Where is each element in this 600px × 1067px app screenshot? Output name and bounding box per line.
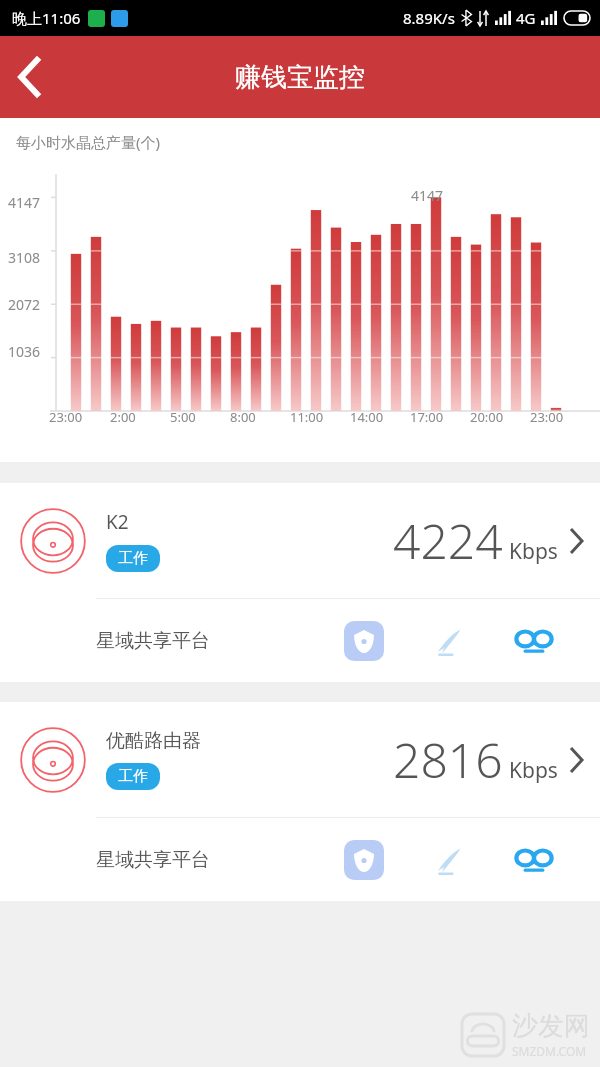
- staticText: 4147: [8, 193, 41, 212]
- staticText: Kbps: [509, 537, 558, 566]
- button[interactable]: K2: [0, 483, 600, 598]
- staticText: 4147: [411, 186, 444, 205]
- button[interactable]: Infinity platform: [514, 624, 554, 658]
- button[interactable]: Back: [0, 47, 60, 107]
- staticText: 4G: [516, 8, 536, 28]
- staticText: 沙发网: [512, 1010, 590, 1043]
- staticText: 11:00: [290, 408, 324, 426]
- button[interactable]: Bird platform: [430, 623, 466, 659]
- button[interactable]: 星域共享平台: [0, 818, 600, 901]
- staticText: 工作: [118, 549, 148, 568]
- staticText: 优酷路由器: [106, 729, 201, 753]
- staticText: 赚钱宝监控: [235, 61, 365, 94]
- button[interactable]: Shield platform: [344, 621, 384, 661]
- staticText: 1036: [8, 342, 41, 361]
- staticText: 17:00: [410, 408, 444, 426]
- staticText: 2816: [393, 727, 503, 792]
- staticText: 3108: [8, 248, 41, 267]
- staticText: 5:00: [170, 408, 196, 426]
- staticText: 工作: [118, 767, 148, 786]
- staticText: 20:00: [470, 408, 504, 426]
- staticText: 14:00: [350, 408, 384, 426]
- button[interactable]: Bird platform: [430, 842, 466, 878]
- button[interactable]: Shield platform: [344, 840, 384, 880]
- staticText: 8:00: [230, 408, 256, 426]
- staticText: K2: [106, 509, 129, 535]
- staticText: 8.89K/s: [403, 8, 455, 28]
- staticText: SMZDM.COM: [512, 1043, 587, 1059]
- staticText: 晚上11:06: [12, 8, 81, 28]
- staticText: 2:00: [110, 408, 136, 426]
- staticText: 每小时水晶总产量(个): [16, 132, 161, 152]
- staticText: 星域共享平台: [96, 629, 210, 653]
- staticText: 星域共享平台: [96, 848, 210, 872]
- button[interactable]: 优酷路由器: [0, 702, 600, 817]
- button[interactable]: Infinity platform: [514, 843, 554, 877]
- staticText: 2072: [8, 295, 41, 314]
- staticText: 23:00: [530, 408, 564, 426]
- staticText: 23:00: [49, 408, 83, 426]
- button[interactable]: 星域共享平台: [0, 599, 600, 682]
- staticText: Kbps: [509, 756, 558, 785]
- staticText: 4224: [393, 508, 503, 573]
